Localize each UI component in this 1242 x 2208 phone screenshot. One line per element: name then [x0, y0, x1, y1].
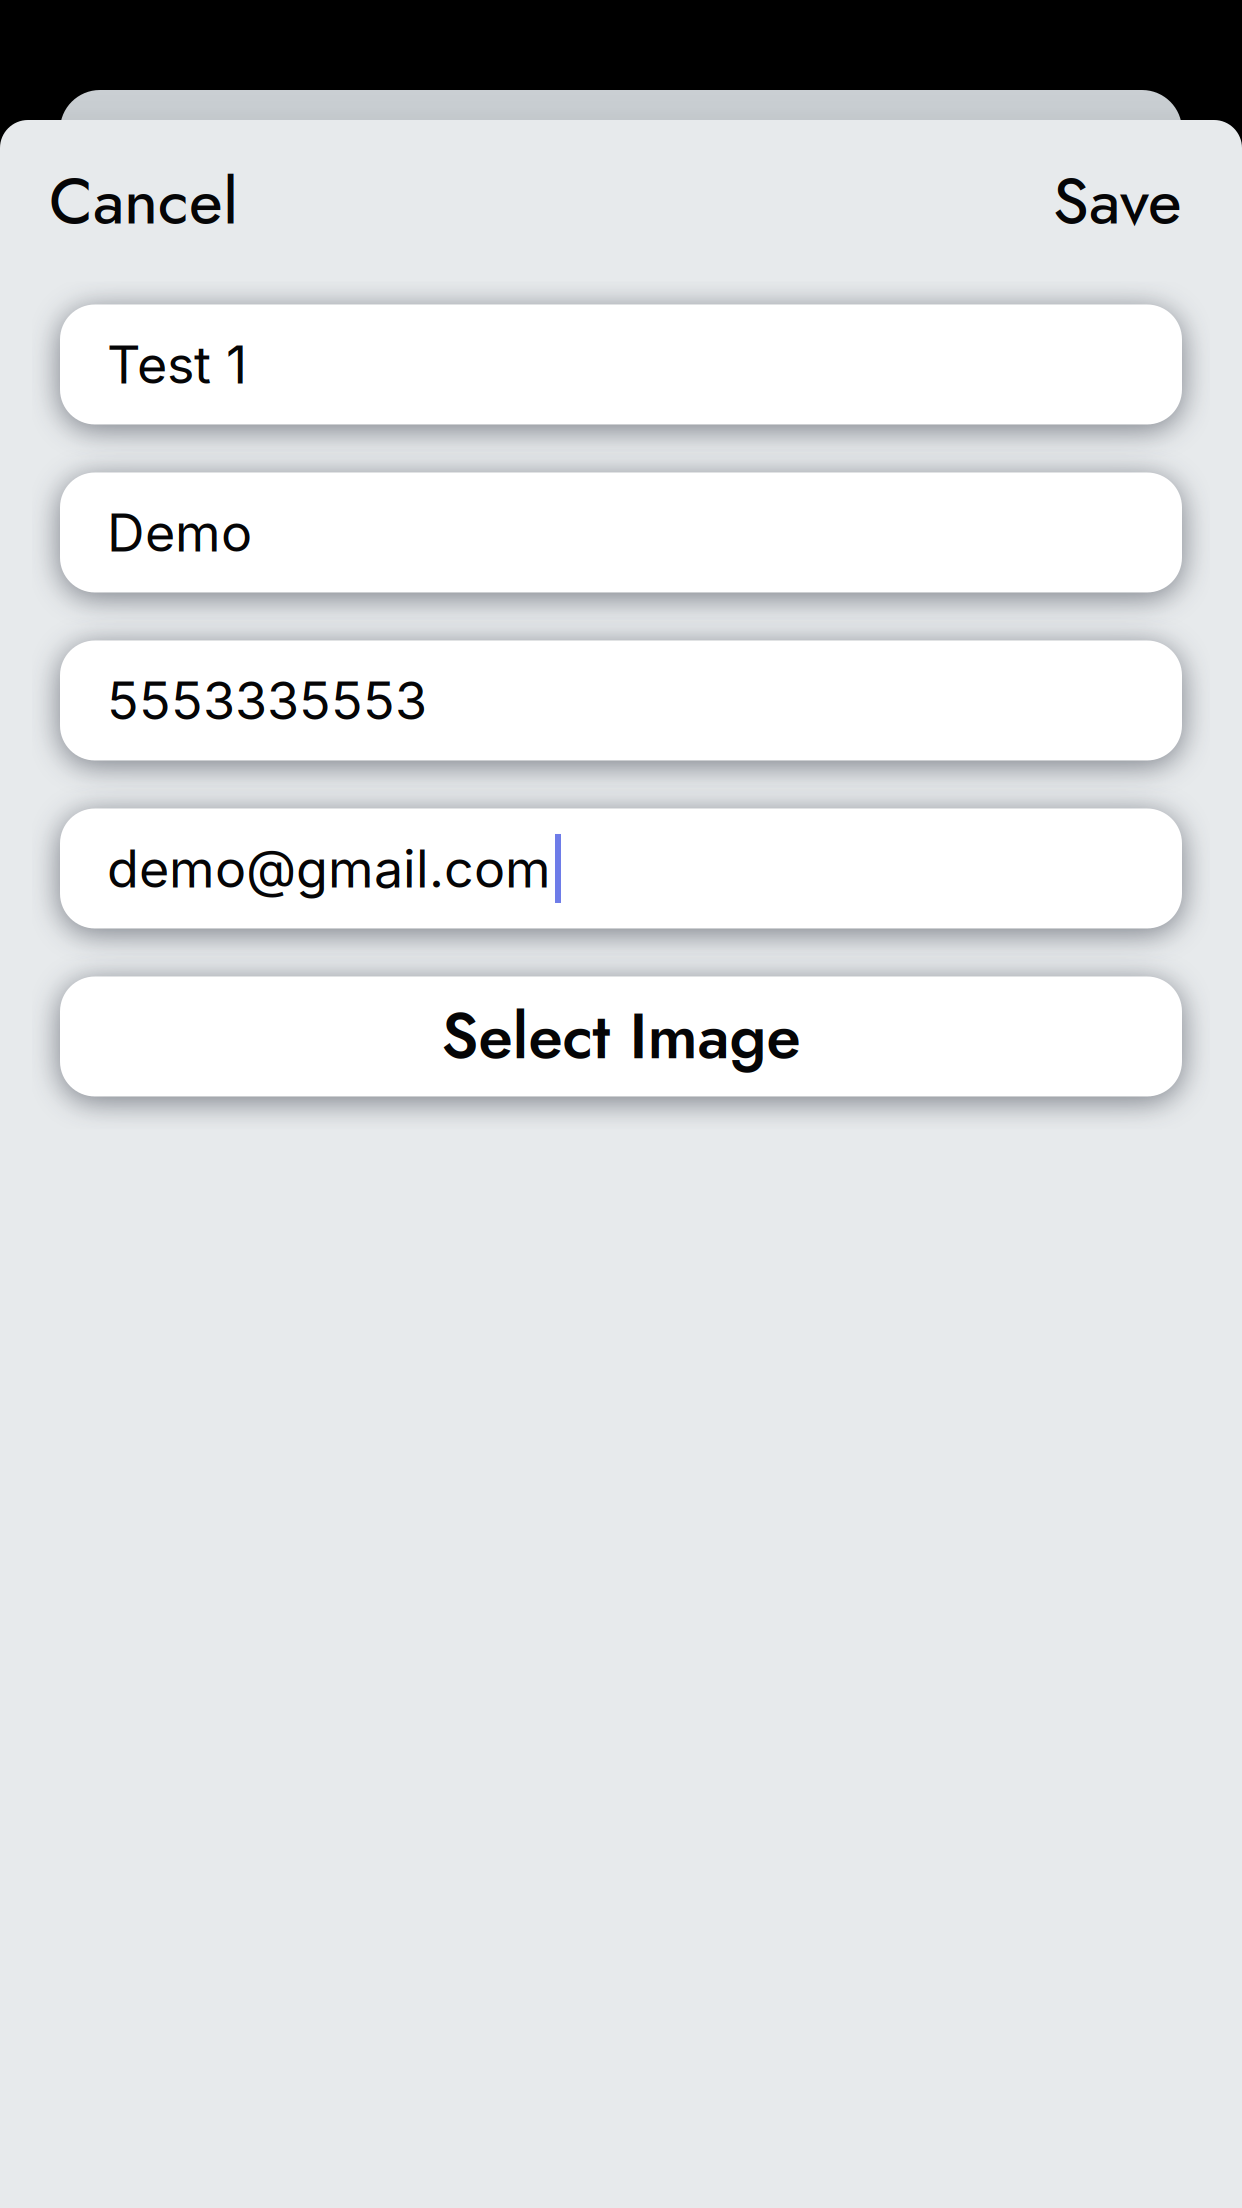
button[interactable]: Select Image: [60, 976, 1182, 1096]
staticText: Test 1: [107, 333, 247, 396]
button[interactable]: demo@gmail.com: [60, 808, 1182, 928]
button[interactable]: Cancel: [39, 133, 248, 269]
staticText: Save: [1053, 155, 1182, 247]
staticText: 5553335553: [107, 669, 427, 732]
button[interactable]: Save: [1043, 133, 1192, 269]
button[interactable]: Demo: [60, 472, 1182, 592]
staticText: Select Image: [441, 991, 800, 1082]
staticText: Demo: [107, 501, 252, 564]
button[interactable]: Test 1: [60, 304, 1182, 424]
staticText: demo@gmail.com: [107, 837, 551, 900]
staticText: Cancel: [49, 155, 238, 247]
button[interactable]: 5553335553: [60, 640, 1182, 760]
